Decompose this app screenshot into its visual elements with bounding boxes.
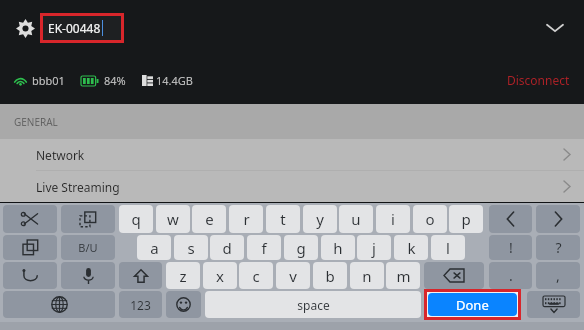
button[interactable]: l bbox=[431, 235, 465, 260]
staticText: B/U bbox=[78, 240, 98, 255]
staticText: GENERAL bbox=[14, 115, 58, 129]
staticText: k bbox=[407, 238, 416, 258]
staticText: f bbox=[261, 238, 267, 258]
button[interactable]: . bbox=[489, 262, 532, 289]
button[interactable]: i bbox=[376, 205, 410, 233]
staticText: Disconnect bbox=[507, 72, 570, 88]
button[interactable]: Network bbox=[0, 139, 584, 170]
staticText: c bbox=[252, 266, 260, 286]
staticText: x bbox=[216, 266, 224, 286]
button[interactable] bbox=[119, 262, 162, 289]
staticText: t bbox=[280, 209, 286, 229]
button[interactable]: s bbox=[174, 235, 208, 260]
button[interactable]: Live Streaming bbox=[0, 171, 584, 202]
button[interactable]: 123 bbox=[119, 291, 162, 318]
staticText: h bbox=[333, 238, 343, 258]
staticText: , bbox=[556, 266, 560, 285]
staticText: d bbox=[222, 238, 232, 258]
button[interactable]: , bbox=[536, 262, 580, 289]
staticText: v bbox=[289, 266, 297, 286]
staticText: y bbox=[316, 209, 324, 229]
staticText: bbb01 bbox=[32, 73, 65, 88]
staticText: o bbox=[425, 209, 435, 229]
button[interactable]: r bbox=[229, 205, 263, 233]
button[interactable] bbox=[3, 291, 115, 318]
button[interactable]: B/U bbox=[61, 235, 115, 260]
staticText: ! bbox=[509, 238, 513, 257]
button[interactable]: u bbox=[339, 205, 373, 233]
button[interactable]: Expand bbox=[538, 11, 572, 45]
button[interactable]: j bbox=[357, 235, 391, 260]
staticText: 14.4GB bbox=[156, 73, 193, 88]
staticText: s bbox=[187, 238, 195, 258]
staticText: m bbox=[396, 266, 411, 286]
button[interactable]: o bbox=[413, 205, 447, 233]
button[interactable]: ! bbox=[489, 235, 532, 260]
button[interactable]: p bbox=[449, 205, 483, 233]
staticText: i bbox=[391, 209, 395, 229]
button[interactable] bbox=[3, 235, 57, 260]
button[interactable]: c bbox=[239, 262, 273, 289]
staticText: Done bbox=[456, 296, 489, 314]
button[interactable] bbox=[536, 205, 580, 233]
button[interactable]: n bbox=[350, 262, 384, 289]
button[interactable] bbox=[489, 205, 532, 233]
button[interactable]: Hide keyboard bbox=[527, 291, 580, 318]
button[interactable]: t bbox=[266, 205, 300, 233]
staticText: space bbox=[297, 297, 330, 313]
staticText: ? bbox=[555, 238, 562, 257]
staticText: g bbox=[296, 238, 306, 258]
button[interactable]: b bbox=[313, 262, 347, 289]
button[interactable]: ? bbox=[536, 235, 580, 260]
staticText: EK-00448 bbox=[48, 20, 101, 36]
other: Hide keyboard bbox=[543, 296, 565, 313]
staticText: Live Streaming bbox=[36, 179, 120, 195]
staticText: 84% bbox=[104, 73, 126, 88]
staticText: n bbox=[362, 266, 372, 286]
button[interactable]: w bbox=[156, 205, 190, 233]
button[interactable]: k bbox=[394, 235, 428, 260]
staticText: e bbox=[205, 209, 214, 229]
button[interactable]: y bbox=[303, 205, 337, 233]
button[interactable]: Disconnect bbox=[503, 68, 574, 92]
button[interactable]: f bbox=[247, 235, 281, 260]
staticText: Network bbox=[36, 147, 85, 163]
button[interactable]: Settings bbox=[8, 11, 42, 45]
staticText: l bbox=[446, 238, 450, 258]
button[interactable]: v bbox=[276, 262, 310, 289]
button[interactable]: a bbox=[137, 235, 171, 260]
staticText: . bbox=[509, 266, 513, 285]
button[interactable] bbox=[424, 262, 484, 289]
button[interactable]: h bbox=[321, 235, 355, 260]
button[interactable]: x bbox=[203, 262, 237, 289]
staticText: j bbox=[372, 238, 376, 258]
staticText: 123 bbox=[130, 297, 151, 313]
button[interactable] bbox=[61, 205, 115, 233]
button[interactable]: g bbox=[284, 235, 318, 260]
staticText: a bbox=[150, 238, 159, 258]
button[interactable] bbox=[166, 291, 201, 318]
staticText: b bbox=[325, 266, 335, 286]
button[interactable]: Done bbox=[428, 293, 517, 316]
button[interactable]: q bbox=[119, 205, 153, 233]
button[interactable]: m bbox=[386, 262, 420, 289]
staticText: w bbox=[167, 209, 179, 229]
button[interactable]: e bbox=[192, 205, 226, 233]
button[interactable] bbox=[61, 262, 115, 289]
button[interactable]: d bbox=[210, 235, 244, 260]
staticText: u bbox=[351, 209, 361, 229]
staticText: p bbox=[461, 209, 471, 229]
button[interactable]: space bbox=[205, 291, 421, 318]
button[interactable] bbox=[3, 205, 57, 233]
staticText: z bbox=[179, 266, 187, 286]
staticText: q bbox=[131, 209, 141, 229]
staticText: r bbox=[243, 209, 250, 229]
button[interactable] bbox=[3, 262, 57, 289]
button[interactable]: z bbox=[166, 262, 200, 289]
button[interactable]: EK-00448 bbox=[43, 16, 121, 40]
